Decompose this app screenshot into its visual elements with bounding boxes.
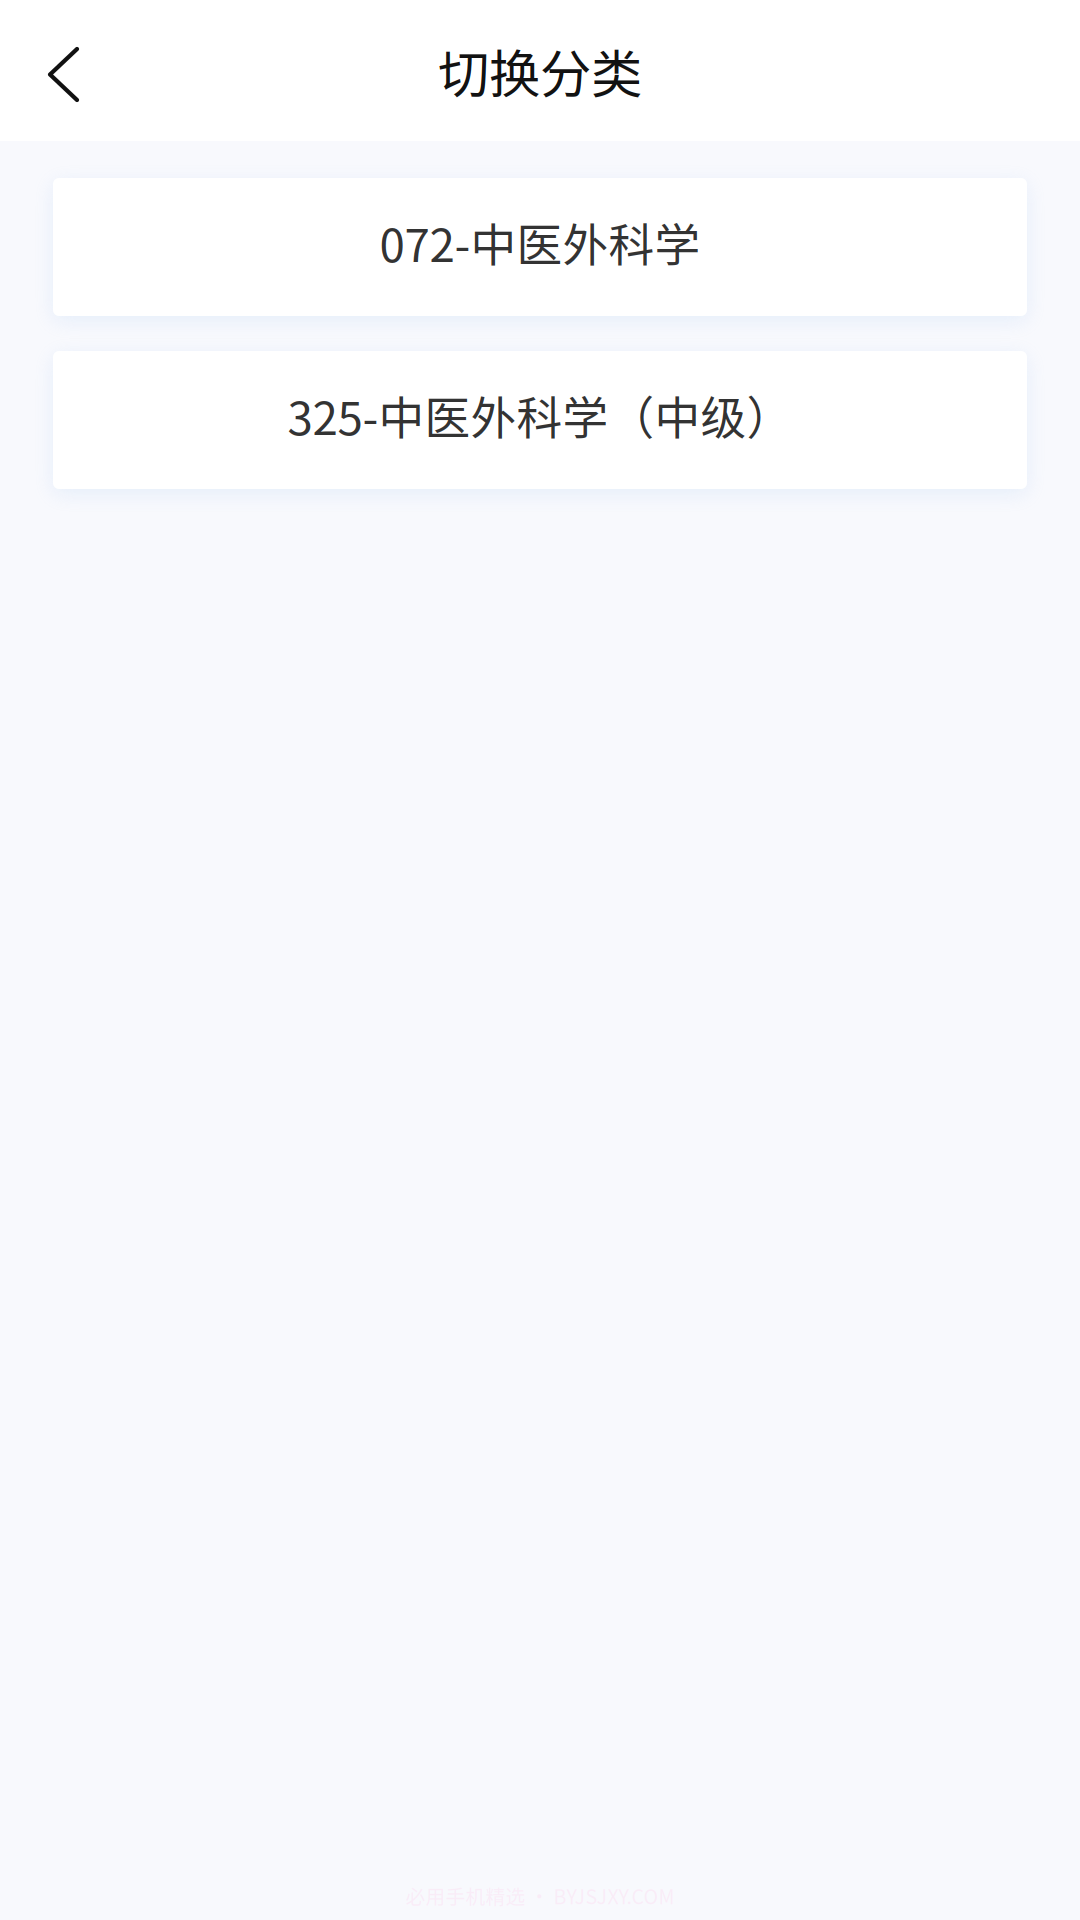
staticText: 必用手机精选 · BYJSJXY.COM xyxy=(405,1881,674,1910)
staticText: 072-中医外科学 xyxy=(379,209,700,275)
button[interactable]: 072-中医外科学 xyxy=(53,178,1027,316)
button[interactable]: 325-中医外科学（中级） xyxy=(53,351,1027,489)
button[interactable]: Back xyxy=(0,0,110,141)
staticText: 切换分类 xyxy=(438,33,642,108)
staticText: 325-中医外科学（中级） xyxy=(287,382,792,448)
